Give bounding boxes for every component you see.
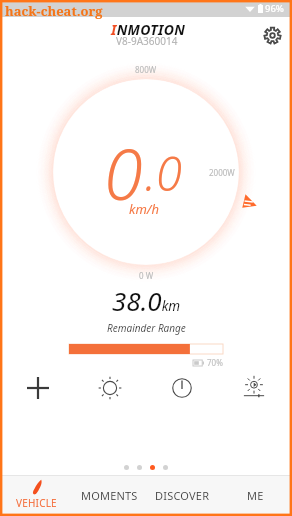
staticText: VEHICLE <box>16 496 57 510</box>
staticText: 0 <box>104 125 143 220</box>
staticText: .0 <box>145 141 182 205</box>
staticText: ME <box>247 488 264 503</box>
staticText: 38.0km <box>112 283 181 318</box>
button[interactable]: Brightness <box>88 366 132 410</box>
staticText: 96% <box>265 2 284 15</box>
staticText: MOMENTS <box>81 488 138 503</box>
button[interactable]: Add <box>16 366 60 410</box>
staticText: 2000W <box>209 167 235 178</box>
button[interactable]: Headlight <box>232 366 276 410</box>
staticText: V8-9A360014 <box>116 34 178 48</box>
button[interactable]: VEHICLE <box>0 476 73 516</box>
button[interactable]: DISCOVER <box>146 476 219 516</box>
staticText: Remainder Range <box>107 321 186 335</box>
staticText: 800W <box>135 64 157 75</box>
staticText: hack-cheat.org <box>5 2 103 20</box>
staticText: INMOTION <box>111 20 186 39</box>
button[interactable]: ME <box>219 476 292 516</box>
button[interactable]: Power <box>160 366 204 410</box>
staticText: 70% <box>207 357 223 368</box>
button[interactable]: MOMENTS <box>73 476 146 516</box>
button[interactable]: Settings <box>258 21 286 49</box>
staticText: km/h <box>129 200 159 218</box>
staticText: 0 W <box>139 270 154 281</box>
staticText: DISCOVER <box>155 488 210 503</box>
